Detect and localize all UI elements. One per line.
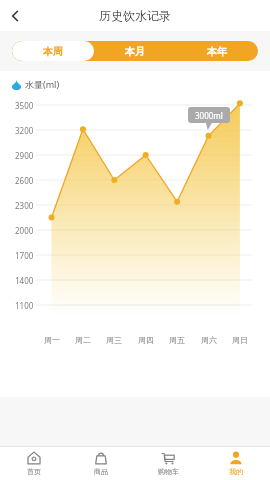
staticText: 周日 [232, 335, 248, 345]
staticText: 2300 [15, 200, 34, 211]
staticText: 商品 [94, 467, 108, 476]
staticText: 周一 [44, 335, 60, 345]
staticText: 周四 [138, 335, 154, 345]
button[interactable]: 首页 [0, 447, 67, 480]
button[interactable]: Back [0, 1, 30, 31]
staticText: 首页 [27, 467, 41, 476]
staticText: 1400 [15, 275, 34, 286]
staticText: 3200 [15, 125, 34, 136]
staticText: 本年 [207, 45, 227, 58]
staticText: 周二 [75, 335, 91, 345]
button[interactable]: 商品 [67, 447, 134, 480]
button[interactable]: 我的 [202, 447, 270, 480]
button[interactable]: 本月 [94, 41, 176, 61]
staticText: 我的 [229, 467, 243, 476]
staticText: 2000 [15, 225, 34, 236]
staticText: 周五 [169, 335, 185, 345]
staticText: 历史饮水记录 [99, 8, 171, 23]
staticText: 3500 [15, 100, 34, 111]
staticText: 购物车 [158, 467, 179, 476]
staticText: 本月 [125, 45, 145, 58]
staticText: 本周 [43, 45, 63, 58]
button[interactable]: 本周 [12, 41, 94, 61]
staticText: 水量(ml) [25, 78, 60, 90]
staticText: 周六 [201, 335, 217, 345]
staticText: 1100 [15, 300, 34, 311]
staticText: 2900 [15, 150, 34, 161]
staticText: 3000ml [195, 110, 223, 121]
staticText: 1700 [15, 250, 34, 261]
staticText: 2600 [15, 175, 34, 186]
staticText: 周三 [106, 335, 122, 345]
button[interactable]: 购物车 [134, 447, 202, 480]
button[interactable]: 本年 [176, 41, 258, 61]
